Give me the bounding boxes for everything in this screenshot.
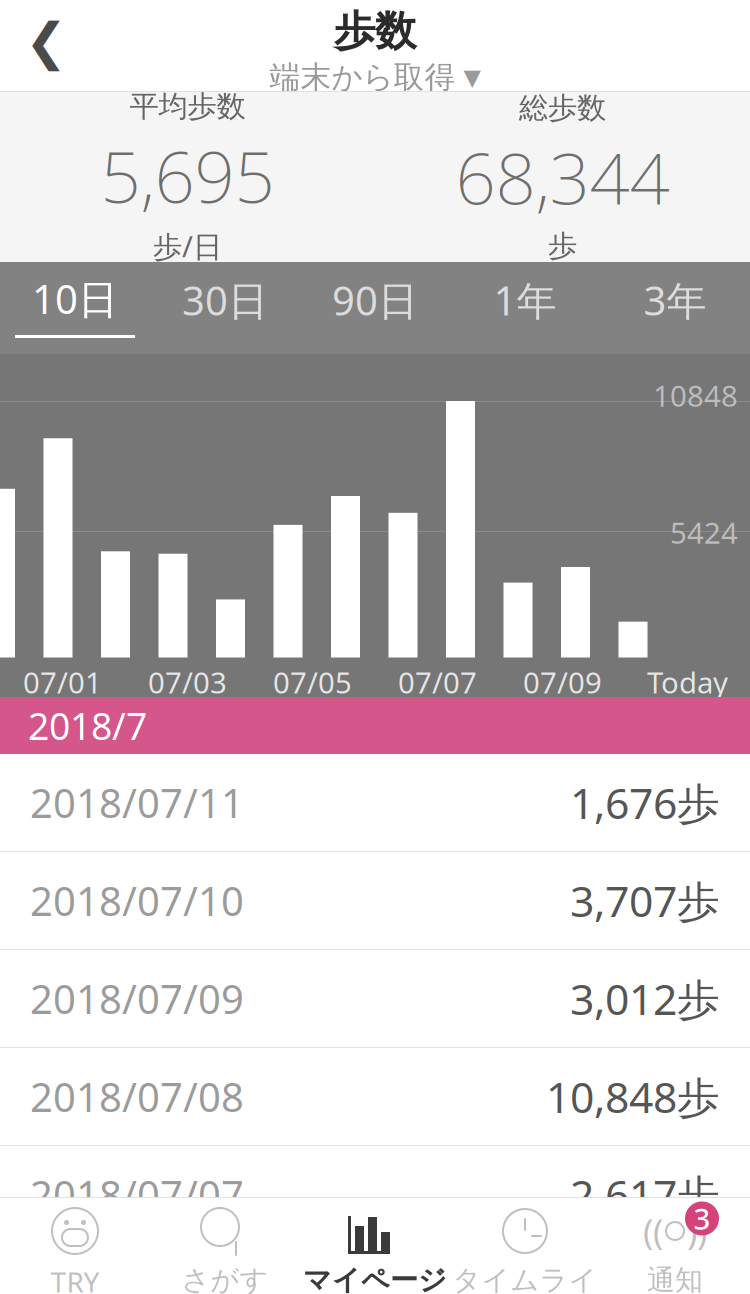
button[interactable]: 3年 [600,262,750,354]
button[interactable]: 2018/07/09 [0,950,750,1048]
staticText: 3年 [643,273,706,326]
staticText: 2018/07/10 [30,874,244,927]
button[interactable]: 戻る [0,0,92,88]
staticText: 07/01 [23,662,102,701]
staticText: 2018/07/07 [30,1168,244,1221]
staticText: さがす [181,1263,268,1294]
staticText: 2018/07/08 [30,1070,244,1123]
staticText: 07/07 [398,662,477,701]
staticText: 2018/7 [28,701,147,750]
staticText: 90日 [332,273,418,326]
staticText: (( [643,1208,663,1254]
staticText: 歩数 [334,6,416,57]
staticText: 5,695 [100,129,274,222]
staticText: 68,344 [455,130,669,224]
staticText: 07/05 [273,662,352,701]
staticText: 10,848歩 [546,1068,720,1125]
staticText: 総歩数 [519,90,606,126]
button[interactable]: 10日 [0,262,150,354]
staticText: 10日 [32,272,118,325]
staticText: 1年 [493,273,556,326]
staticText: 歩/日 [153,226,222,265]
staticText: ❮ [25,13,67,70]
button[interactable]: タイムライン [450,1205,600,1294]
button[interactable]: マイページ [300,1205,450,1294]
staticText: 2,617歩 [570,1166,720,1223]
staticText: 3,012歩 [570,970,720,1027]
staticText: 07/03 [148,662,227,701]
button[interactable]: さがす [150,1205,300,1294]
button[interactable]: 2018/07/07 [0,1146,750,1244]
staticText: 5424 [670,513,738,552]
button[interactable]: (( [600,1205,750,1294]
staticText: タイムライン [452,1263,597,1294]
staticText: 平均歩数 [129,89,245,125]
staticText: 2018/07/09 [30,972,244,1025]
button[interactable]: 2018/07/08 [0,1048,750,1146]
button[interactable]: TRY [0,1205,150,1294]
staticText: 30日 [182,273,268,326]
staticText: 10848 [653,376,738,415]
button[interactable]: 90日 [300,262,450,354]
staticText: 2018/07/11 [30,776,244,829]
staticText: 1,676歩 [570,774,720,831]
button[interactable]: 2018/07/11 [0,754,750,852]
staticText: 歩 [548,228,577,264]
button[interactable]: 1年 [450,262,600,354]
staticText: )) [687,1208,707,1254]
staticText: 端末から取得 [269,59,455,96]
staticText: 3,707歩 [570,872,720,929]
staticText: ▼ [463,64,480,90]
staticText: Today [647,662,728,701]
staticText: マイページ [303,1263,447,1294]
staticText: 3 [693,1199,710,1238]
staticText: 07/09 [523,662,602,701]
button[interactable]: 30日 [150,262,300,354]
staticText: 通知 [647,1263,703,1294]
staticText: TRY [50,1263,99,1294]
button[interactable]: 2018/07/10 [0,852,750,950]
